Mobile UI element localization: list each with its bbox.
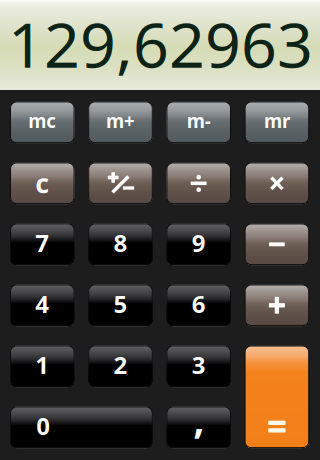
staticText: 4 [35,288,49,320]
button[interactable]: Equals [245,346,309,448]
button[interactable]: 9 [167,224,230,265]
staticText: 2 [113,349,127,381]
button[interactable]: Decimal separator [167,407,230,448]
staticText: 9 [192,227,206,259]
button[interactable]: Memory add [89,102,152,143]
staticText: 0 [36,410,50,442]
button[interactable]: Memory recall [245,102,309,143]
staticText: , [193,392,204,445]
button[interactable]: Memory clear [10,102,74,143]
button[interactable]: 0 [10,407,152,448]
button[interactable]: 4 [10,285,74,326]
staticText: 6 [192,288,206,320]
button[interactable]: Minus [245,224,309,265]
button[interactable]: 7 [10,224,74,265]
button[interactable]: Divide [167,163,230,204]
staticText: mc [28,108,56,133]
staticText: 7 [35,227,49,259]
staticText: c [35,165,49,200]
staticText: 3 [192,349,206,381]
button[interactable]: Memory subtract [167,102,230,143]
button[interactable]: Multiply [245,163,309,204]
button[interactable]: 3 [167,346,230,387]
button[interactable]: Clear [10,163,74,204]
staticText: m+ [106,108,135,133]
button[interactable]: 1 [10,346,74,387]
staticText: 1 [35,349,49,381]
button[interactable]: 5 [89,285,152,326]
button[interactable]: 2 [89,346,152,387]
staticText: 5 [113,288,127,320]
button[interactable]: 6 [167,285,230,326]
button[interactable]: 8 [89,224,152,265]
staticText: 8 [113,227,127,259]
button[interactable]: Plus minus [89,163,152,204]
button[interactable]: Plus [245,285,309,326]
staticText: mr [264,108,290,133]
staticText: m- [187,108,211,133]
staticText: 129,62963 [8,2,313,85]
